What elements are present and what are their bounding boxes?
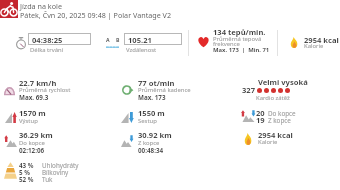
staticText: Sestup	[138, 117, 157, 125]
staticText: Vzdálenost	[126, 46, 157, 54]
staticText: Tuk	[42, 175, 53, 184]
staticText: 22.7 km/h	[19, 78, 57, 88]
staticText: Jízda na kole	[20, 1, 62, 11]
staticText: Do kopce	[19, 139, 45, 147]
staticText: Kalorie	[304, 42, 324, 50]
staticText: 2954 kcal	[304, 35, 339, 45]
staticText: 19	[256, 115, 265, 125]
button[interactable]: Jízda na kole	[0, 0, 340, 21]
staticText: 43 %	[19, 161, 34, 170]
staticText: Průměrná kadence	[138, 86, 191, 94]
staticText: 1550 m	[138, 108, 165, 118]
staticText: Kalorie	[258, 138, 278, 146]
staticText: 5 %	[19, 168, 30, 177]
staticText: 77 ot/min	[138, 78, 175, 88]
staticText: Uhlohydráty	[42, 161, 79, 170]
staticText: 30.92 km	[138, 130, 172, 140]
staticText: Průměrná tepová	[213, 35, 262, 43]
staticText: 20	[256, 108, 265, 118]
staticText: 36.29 km	[19, 130, 53, 140]
staticText: Z kopce	[138, 139, 160, 147]
staticText: Výstup	[19, 117, 38, 125]
staticText: 1570 m	[19, 108, 46, 118]
staticText: Pátek, Čvn 20, 2025 09:48 | Polar Vantag…	[20, 10, 172, 20]
staticText: Z kopce	[268, 116, 291, 125]
staticText: 105.21	[128, 35, 152, 45]
staticText: Průměrná rychlost	[19, 86, 71, 94]
staticText: A	[106, 36, 110, 43]
staticText: Max. 69.3	[19, 93, 49, 102]
staticText: 327	[242, 85, 256, 95]
staticText: 00:48:34	[138, 146, 164, 155]
staticText: Délka trvání	[30, 46, 64, 54]
staticText: Max. 173	[138, 93, 166, 102]
staticText: 2954 kcal	[258, 130, 293, 140]
staticText: Do kopce	[268, 109, 296, 118]
staticText: 04:38:25	[32, 35, 63, 45]
staticText: 134 tepů/min.	[213, 27, 266, 37]
staticText: B	[116, 36, 120, 43]
staticText: frekvence	[213, 40, 240, 48]
staticText: 52 %	[19, 175, 34, 184]
staticText: Max. 173 | Min. 71	[213, 46, 270, 54]
staticText: Velmi vysoká	[258, 77, 308, 87]
staticText: 02:12:06	[19, 146, 45, 155]
staticText: Kardio zátěž	[256, 94, 290, 102]
staticText: Bílkoviny	[42, 168, 69, 177]
